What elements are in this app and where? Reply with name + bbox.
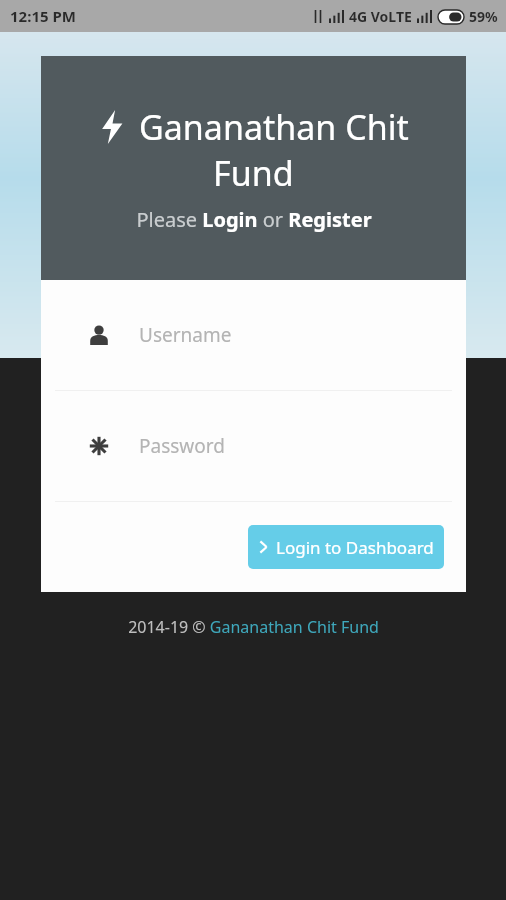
other: Password: [89, 436, 109, 456]
button[interactable]: Password: [41, 391, 466, 501]
staticText: 4G VoLTE: [349, 7, 412, 26]
staticText: Gananathan Chit: [139, 104, 409, 150]
button[interactable]: Username: [41, 280, 466, 390]
staticText: 2014-19 © Gananathan Chit Fund: [128, 616, 379, 638]
staticText: 59%: [469, 7, 498, 26]
staticText: 12:15 PM: [10, 6, 76, 26]
staticText: Fund: [213, 150, 294, 196]
staticText: Username: [139, 322, 232, 348]
staticText: Login to Dashboard: [276, 536, 434, 559]
button[interactable]: Login to Dashboard: [248, 525, 444, 569]
staticText: Please Login or Register: [136, 206, 372, 233]
other: Username: [89, 325, 109, 345]
staticText: Password: [139, 433, 225, 459]
other: Logo: [99, 110, 125, 144]
